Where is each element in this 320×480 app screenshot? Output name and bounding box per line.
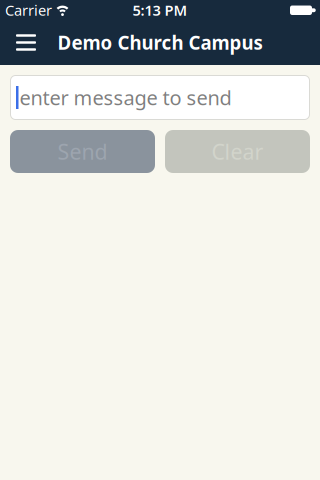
button[interactable]: Menu <box>16 34 36 51</box>
button[interactable]: enter message to send <box>10 75 310 120</box>
staticText: Demo Church Campus <box>57 30 262 55</box>
staticText: Clear <box>211 137 263 166</box>
staticText: Send <box>57 137 107 166</box>
button[interactable]: Clear <box>165 130 310 173</box>
staticText: enter message to send <box>19 84 231 111</box>
staticText: Carrier <box>5 0 52 20</box>
button[interactable]: Send <box>10 130 155 173</box>
staticText: 5:13 PM <box>132 0 187 20</box>
